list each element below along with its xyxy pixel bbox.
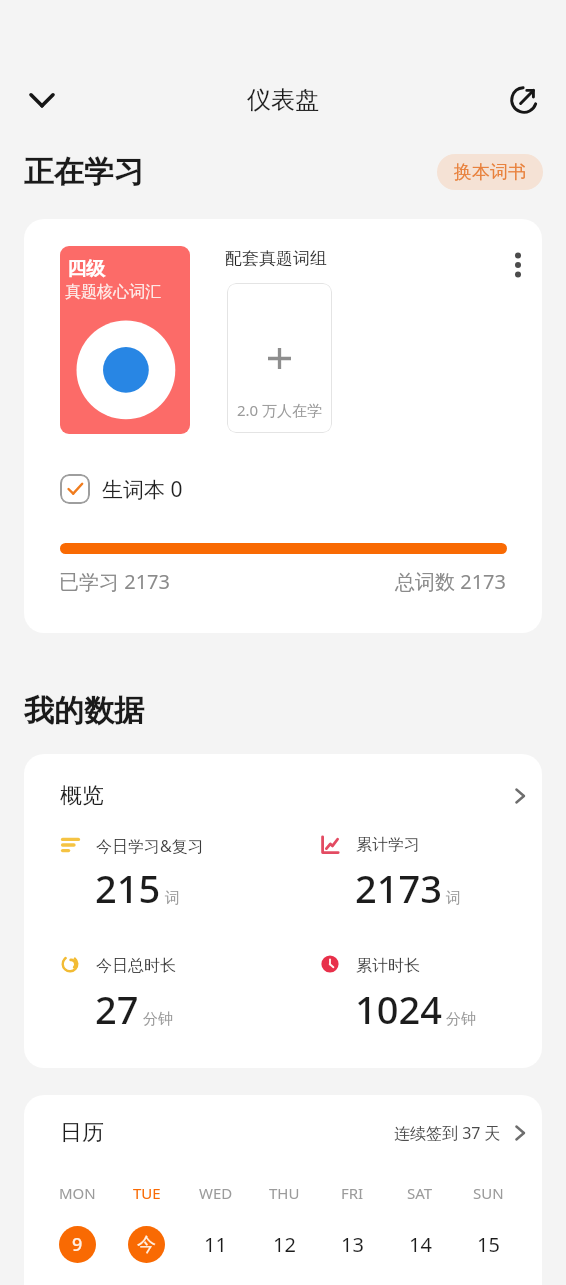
staticText: 今日学习&复习 xyxy=(96,835,204,857)
staticText: 14 xyxy=(409,1231,432,1258)
staticText: 真题核心词汇 xyxy=(65,282,161,302)
staticText: 我的数据 xyxy=(24,692,144,730)
staticText: 生词本 0 xyxy=(102,475,183,504)
staticText: TUE xyxy=(133,1183,161,1203)
button[interactable]: 14 xyxy=(402,1226,439,1263)
button[interactable]: 9 xyxy=(59,1226,96,1263)
staticText: SAT xyxy=(407,1183,433,1203)
staticText: 2173 xyxy=(355,862,442,914)
staticText: 已学习 2173 xyxy=(59,568,170,595)
button[interactable]: 11 xyxy=(197,1226,234,1263)
button[interactable]: More options xyxy=(498,245,538,285)
staticText: 日历 xyxy=(60,1119,104,1147)
staticText: 累计学习 xyxy=(356,835,420,855)
staticText: 分钟 xyxy=(446,1010,476,1029)
staticText: THU xyxy=(269,1183,300,1203)
staticText: 今日总时长 xyxy=(96,956,176,976)
staticText: 概览 xyxy=(60,782,104,810)
button[interactable]: 13 xyxy=(334,1226,371,1263)
staticText: 27 xyxy=(95,983,139,1035)
button[interactable]: 四级 xyxy=(60,246,190,434)
staticText: 累计时长 xyxy=(356,956,420,976)
staticText: FRI xyxy=(341,1183,364,1203)
staticText: 配套真题词组 xyxy=(225,248,327,269)
button[interactable]: 日历 xyxy=(24,1113,542,1153)
staticText: 总词数 2173 xyxy=(395,568,506,595)
staticText: 9 xyxy=(72,1232,83,1257)
staticText: 1024 xyxy=(355,983,442,1035)
staticText: 15 xyxy=(477,1231,500,1258)
staticText: 仪表盘 xyxy=(247,85,319,115)
staticText: SUN xyxy=(473,1183,504,1203)
staticText: 正在学习 xyxy=(24,153,144,191)
staticText: 13 xyxy=(341,1231,364,1258)
button[interactable]: 换本词书 xyxy=(437,154,543,190)
staticText: WED xyxy=(199,1183,233,1203)
staticText: 换本词书 xyxy=(454,161,526,184)
staticText: 词 xyxy=(446,889,461,908)
staticText: 分钟 xyxy=(143,1010,173,1029)
staticText: 今 xyxy=(137,1233,156,1257)
button[interactable]: 生词本 0 xyxy=(60,474,183,504)
button[interactable]: 今 xyxy=(128,1226,165,1263)
staticText: 连续签到 37 天 xyxy=(394,1122,501,1144)
button[interactable]: 15 xyxy=(470,1226,507,1263)
staticText: 2.0 万人在学 xyxy=(237,400,323,420)
staticText: 215 xyxy=(95,862,161,914)
staticText: 11 xyxy=(204,1231,227,1258)
button[interactable]: 12 xyxy=(266,1226,303,1263)
staticText: 词 xyxy=(165,889,180,908)
staticText: 12 xyxy=(273,1231,296,1258)
button[interactable]: Share xyxy=(496,72,552,128)
button[interactable]: Collapse xyxy=(14,72,70,128)
staticText: 四级 xyxy=(67,257,105,281)
button[interactable]: 2.0 万人在学 xyxy=(227,283,332,433)
button[interactable]: 概览 xyxy=(24,776,542,816)
staticText: MON xyxy=(59,1183,96,1203)
